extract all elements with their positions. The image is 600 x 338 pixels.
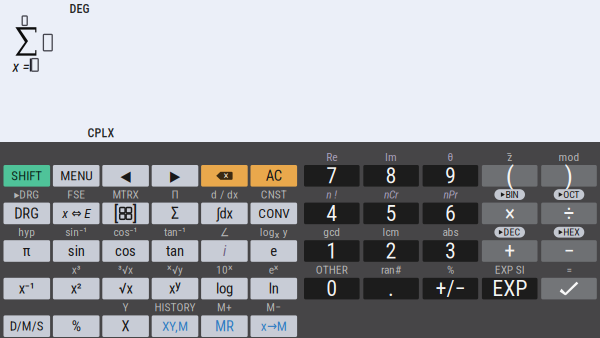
button[interactable]: x ⇔ E (53, 203, 99, 224)
staticText: + (504, 238, 515, 264)
button[interactable]: x→M (250, 315, 297, 337)
button[interactable]: Equals (541, 278, 597, 299)
button[interactable]: x⁻¹ (3, 278, 50, 299)
staticText: x ⇔ E (62, 206, 90, 221)
staticText: x⁻¹ (19, 280, 35, 297)
staticText: nCr (384, 188, 398, 201)
staticText: d / dx (211, 188, 238, 201)
staticText: ( (506, 160, 514, 191)
staticText: 4 (326, 200, 337, 226)
button[interactable]: e (250, 240, 297, 262)
button[interactable]: 4 (304, 203, 360, 224)
button[interactable]: CONV (250, 203, 297, 224)
staticText: gcd (323, 225, 340, 239)
button[interactable]: 1 (304, 240, 360, 262)
staticText: CONV (258, 206, 289, 221)
staticText: ] (133, 202, 138, 225)
staticText: θ (447, 150, 453, 164)
staticText: √x (119, 280, 133, 297)
staticText: % (72, 318, 81, 335)
button[interactable]: log (201, 278, 248, 299)
staticText: abs (442, 225, 458, 239)
button[interactable]: 7 (304, 165, 360, 187)
button[interactable]: i (201, 240, 248, 262)
button[interactable]: MR (201, 315, 248, 337)
button[interactable]: ( (482, 165, 537, 187)
button[interactable]: π (3, 240, 50, 262)
staticText: sin⁻¹ (65, 225, 87, 239)
button[interactable]: tan (152, 240, 198, 262)
button[interactable]: + (482, 240, 537, 262)
staticText: − (563, 238, 574, 264)
staticText: OCT (563, 189, 579, 200)
staticText: cos (115, 242, 136, 260)
button[interactable]: 3 (423, 240, 478, 262)
staticText: tan (166, 242, 184, 260)
staticText: × (505, 200, 515, 226)
button[interactable]: Matrix (102, 203, 149, 224)
staticText: SHIFT (11, 168, 42, 183)
button[interactable]: √x (102, 278, 149, 299)
staticText: ∠ (220, 225, 229, 239)
button[interactable]: ÷ (541, 203, 597, 224)
staticText: x = (12, 57, 29, 75)
button[interactable]: Delete (201, 165, 248, 187)
staticText: ◀ (121, 167, 131, 184)
button[interactable]: ∫dx (201, 203, 248, 224)
button[interactable]: . (363, 278, 419, 299)
button[interactable]: ) (541, 165, 597, 187)
staticText: ˣ√y (167, 263, 183, 276)
staticText: ▶ (170, 167, 180, 184)
button[interactable]: 0 (304, 278, 360, 299)
button[interactable]: xʸ (152, 278, 198, 299)
button[interactable]: XY,M (152, 315, 198, 337)
button[interactable]: Σ (152, 203, 198, 224)
staticText: DEC (503, 226, 520, 238)
staticText: D/M/S (10, 319, 44, 334)
staticText: Π (171, 188, 178, 201)
staticText: 6 (445, 200, 456, 226)
button[interactable]: +/− (423, 278, 478, 299)
button[interactable]: D/M/S (3, 315, 50, 337)
button[interactable]: cos (102, 240, 149, 262)
button[interactable]: x² (53, 278, 99, 299)
staticText: ÷ (563, 200, 574, 226)
staticText: 5 (386, 200, 397, 226)
staticText: ran# (381, 263, 401, 276)
staticText: nPr (443, 188, 457, 201)
staticText: 1 (326, 238, 337, 264)
button[interactable]: MENU (53, 165, 99, 187)
staticText: π (23, 242, 31, 260)
button[interactable]: 5 (363, 203, 419, 224)
button[interactable]: × (482, 203, 537, 224)
button[interactable]: % (53, 315, 99, 337)
button[interactable]: ◀ (102, 165, 149, 187)
button[interactable]: 2 (363, 240, 419, 262)
staticText: i (223, 242, 226, 260)
button[interactable]: AC (250, 165, 297, 187)
button[interactable]: 9 (423, 165, 478, 187)
button[interactable]: X (102, 315, 149, 337)
staticText: Y (123, 301, 129, 314)
staticText: EXP (492, 276, 527, 301)
staticText: n ! (326, 188, 337, 201)
staticText: ) (564, 160, 573, 191)
button[interactable]: ▶ (152, 165, 198, 187)
staticText: % (447, 263, 454, 276)
staticText: ∫dx (216, 205, 232, 222)
staticText: 10ˣ (216, 263, 233, 276)
staticText: 8 (386, 163, 397, 189)
button[interactable]: sin (53, 240, 99, 262)
staticText: OTHER (316, 263, 348, 276)
button[interactable]: ln (250, 278, 297, 299)
button[interactable]: DRG (3, 203, 50, 224)
staticText: EXP SI (495, 263, 525, 276)
button[interactable]: 8 (363, 165, 419, 187)
button[interactable]: SHIFT (3, 165, 50, 187)
button[interactable]: 6 (423, 203, 478, 224)
staticText: +/− (435, 276, 465, 301)
staticText: cos⁻¹ (114, 225, 138, 239)
staticText: z̄ (507, 150, 512, 164)
button[interactable]: − (541, 240, 597, 262)
button[interactable]: EXP (482, 278, 537, 299)
